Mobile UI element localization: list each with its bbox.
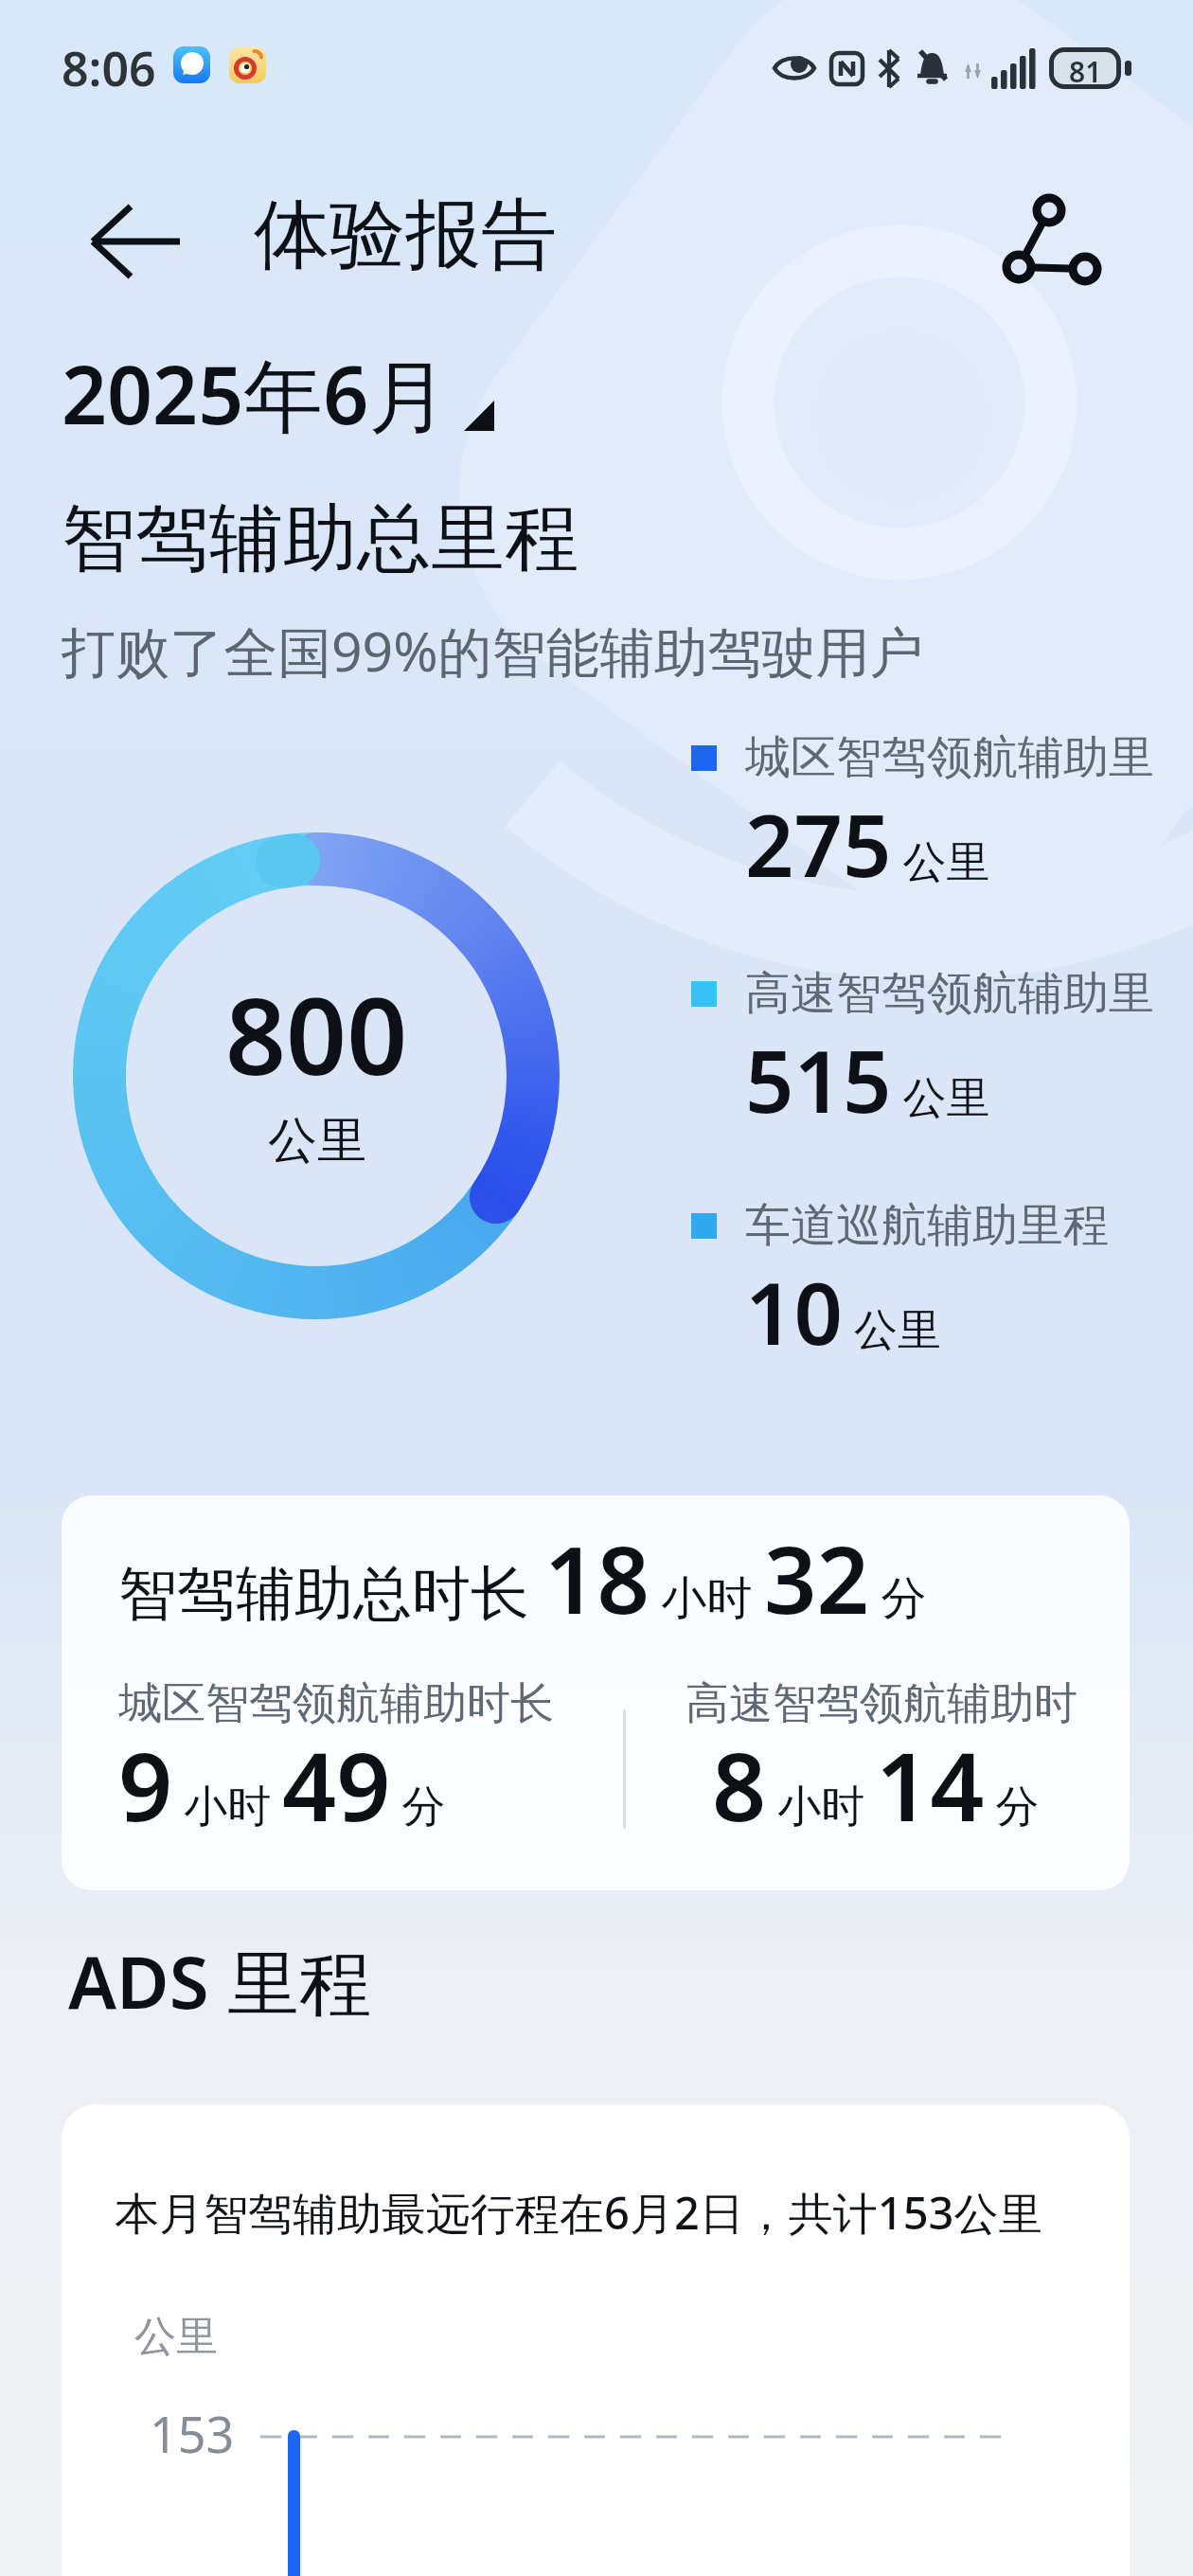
staticText: 公里 [268, 1110, 366, 1172]
staticText: 9 小时 49 分 [118, 1720, 446, 1849]
staticText: 8:06 [62, 36, 156, 93]
staticText: 153 [150, 2400, 235, 2467]
button[interactable]: 2025年6月 [62, 339, 494, 448]
staticText: 城区智驾领航辅助时长 [118, 1676, 554, 1731]
staticText: 275 公里 [745, 786, 990, 903]
staticText: 智驾辅助总时长 18 小时 32 分 [118, 1515, 927, 1640]
staticText: 515 公里 [745, 1022, 990, 1138]
button[interactable] [985, 186, 1089, 290]
staticText: 81 [1069, 52, 1102, 84]
staticText: 2025年6月 [62, 339, 449, 448]
staticText: 10 公里 [745, 1254, 941, 1370]
staticText: 800 [225, 961, 408, 1106]
staticText: 高速智驾领航辅助时 [686, 1676, 1077, 1731]
staticText: 智驾辅助总里程 [62, 492, 579, 585]
staticText: 城区智驾领航辅助里 [745, 729, 1154, 786]
staticText: 8 小时 14 分 [712, 1720, 1040, 1849]
staticText: 公里 [134, 2311, 218, 2363]
staticText: 体验报告 [254, 188, 557, 283]
staticText: 本月智驾辅助最远行程在6月2日，共计153公里 [115, 2182, 1043, 2243]
staticText: 车道巡航辅助里程 [745, 1197, 1109, 1254]
staticText: ADS 里程 [68, 1932, 372, 2030]
staticText: 高速智驾领航辅助里 [745, 965, 1154, 1022]
staticText: 打败了全国99%的智能辅助驾驶用户 [62, 614, 924, 688]
button[interactable] [76, 189, 199, 294]
